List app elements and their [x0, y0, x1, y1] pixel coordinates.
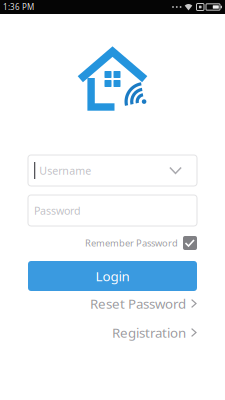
button[interactable]: Registration	[28, 324, 197, 341]
button[interactable]: Password	[28, 195, 197, 226]
staticText: Remember Password	[85, 237, 178, 249]
button[interactable]: Reset Password	[28, 295, 197, 312]
button[interactable]: Remember Password	[28, 236, 197, 250]
staticText: Password	[34, 203, 81, 218]
staticText: 1:36 PM	[3, 2, 34, 12]
staticText: Registration	[112, 324, 186, 341]
staticText: Login	[95, 267, 129, 285]
button[interactable]: Username	[28, 155, 197, 186]
button[interactable]: Login	[28, 261, 197, 291]
staticText: Reset Password	[90, 295, 186, 312]
staticText: Username	[39, 163, 91, 178]
